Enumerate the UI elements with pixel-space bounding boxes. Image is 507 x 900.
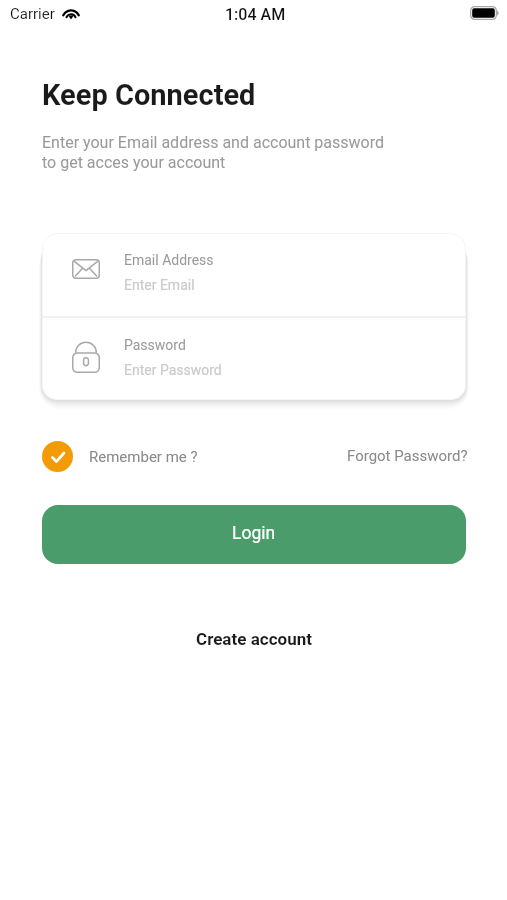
button[interactable]: Email Address: [42, 233, 466, 316]
staticText: Enter your Email address and account pas…: [42, 133, 385, 172]
staticText: Password: [124, 337, 186, 353]
button[interactable]: Forgot Password?: [347, 447, 468, 465]
button[interactable]: Login: [42, 505, 466, 564]
staticText: 1:04 AM: [225, 5, 286, 24]
staticText: Login: [232, 523, 276, 544]
staticText: Enter Email: [124, 277, 195, 293]
staticText: Email Address: [124, 252, 214, 268]
button[interactable]: Remember me: [42, 441, 198, 472]
staticText: Enter Password: [124, 362, 222, 378]
staticText: Keep Connected: [42, 78, 256, 112]
staticText: Carrier: [10, 5, 55, 23]
button[interactable]: Password: [42, 318, 466, 400]
staticText: Remember me ?: [89, 448, 198, 466]
button[interactable]: Create account: [186, 624, 322, 654]
